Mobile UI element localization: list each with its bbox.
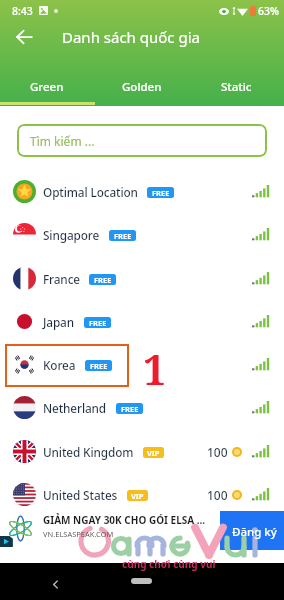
button[interactable]: France <box>0 257 284 300</box>
staticText: FREE <box>152 188 170 198</box>
button[interactable]: Japan <box>0 300 284 343</box>
staticText: 1 <box>143 341 167 397</box>
button[interactable]: United Kingdom <box>0 430 284 473</box>
button[interactable]: Golden <box>94 72 189 106</box>
staticText: FREE <box>90 361 108 371</box>
staticText: VN.ELSASPEAK.COM <box>43 529 114 539</box>
staticText: 100 <box>207 487 228 503</box>
button[interactable]: United States <box>0 473 284 516</box>
staticText: FREE <box>114 231 132 241</box>
button[interactable]: Green <box>0 72 94 106</box>
button[interactable]: Back <box>42 571 68 597</box>
staticText: Golden <box>122 79 162 95</box>
button[interactable]: Korea <box>0 343 284 386</box>
staticText: Korea <box>43 357 76 373</box>
staticText: Static <box>221 79 252 95</box>
staticText: VIP <box>147 448 160 458</box>
button[interactable]: Back <box>6 19 42 55</box>
staticText: Japan <box>43 314 75 330</box>
staticText: France <box>43 271 80 287</box>
button[interactable]: Netherland <box>0 386 284 429</box>
staticText: FREE <box>121 404 139 414</box>
staticText: Đăng ký <box>232 524 277 540</box>
staticText: 100 <box>207 444 228 460</box>
staticText: Green <box>30 79 64 95</box>
button[interactable]: Tìm kiếm ... <box>17 124 267 157</box>
staticText: Netherland <box>43 400 107 416</box>
staticText: FREE <box>94 275 112 285</box>
staticText: Singapore <box>43 227 100 243</box>
staticText: VIP <box>131 491 144 501</box>
staticText: cùng chơi cùng vui <box>122 557 216 571</box>
button[interactable]: Home <box>131 578 152 584</box>
staticText: 63% <box>258 4 279 18</box>
button[interactable]: Static <box>189 72 284 106</box>
staticText: GIẢM NGAY 30K CHO GÓI ELSA ... <box>43 513 206 527</box>
button[interactable]: Optimal Location <box>0 170 284 213</box>
staticText: Tìm kiếm ... <box>30 133 95 149</box>
staticText: FREE <box>89 318 107 328</box>
button[interactable]: Singapore <box>0 213 284 256</box>
staticText: Optimal Location <box>43 184 138 200</box>
staticText: United Kingdom <box>43 444 134 460</box>
staticText: 8:43 <box>12 4 33 18</box>
staticText: United States <box>43 487 118 503</box>
staticText: Danh sách quốc gia <box>62 27 200 47</box>
button[interactable]: Đăng ký <box>220 511 284 550</box>
